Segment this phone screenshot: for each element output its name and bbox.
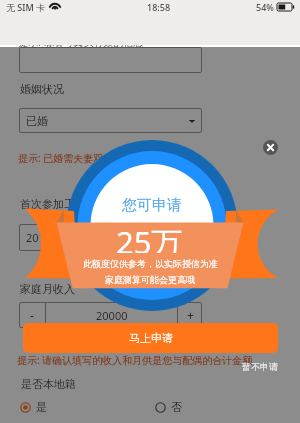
button[interactable]: 已婚	[19, 108, 202, 133]
staticText: 20000	[96, 308, 128, 323]
button[interactable]: 马上申请	[23, 323, 278, 353]
button[interactable]: +	[178, 302, 202, 328]
staticText: 25万	[116, 221, 183, 253]
staticText: 家庭测算可能会更高哦	[105, 274, 195, 285]
staticText: -	[30, 307, 34, 323]
staticText: 2010-06	[26, 230, 68, 245]
staticText: 家庭月收入	[20, 282, 75, 296]
staticText: 婚姻状况	[20, 82, 64, 96]
staticText: 18:58	[147, 1, 171, 13]
staticText: 否	[171, 400, 182, 414]
staticText: 提示: 请填写真实有效的信息	[18, 35, 144, 49]
button[interactable]: Close	[263, 140, 278, 155]
button[interactable]: 暂不申请	[242, 361, 278, 372]
button[interactable]: 是	[20, 400, 47, 414]
staticText: 提示: 请确认填写的收入和月供是您与配偶的合计金额	[17, 353, 253, 367]
staticText: 已婚	[26, 114, 48, 128]
staticText: 马上申请	[129, 331, 173, 345]
staticText: 54%	[256, 1, 274, 13]
staticText: 此额度仅供参考，以实际授信为准	[83, 258, 218, 269]
staticText: +	[187, 307, 194, 323]
button[interactable]: -	[19, 302, 45, 328]
staticText: 无 SIM 卡	[6, 1, 46, 13]
staticText: 首次参加工作时间	[20, 197, 108, 211]
staticText: 是否本地籍	[21, 377, 76, 391]
staticText: 是	[36, 400, 47, 414]
staticText: 提示: 已婚需夫妻双方资料	[18, 151, 134, 165]
button[interactable]: 2010-06	[19, 224, 202, 251]
button[interactable]: 否	[155, 400, 182, 414]
staticText: 您可申请	[122, 196, 182, 215]
